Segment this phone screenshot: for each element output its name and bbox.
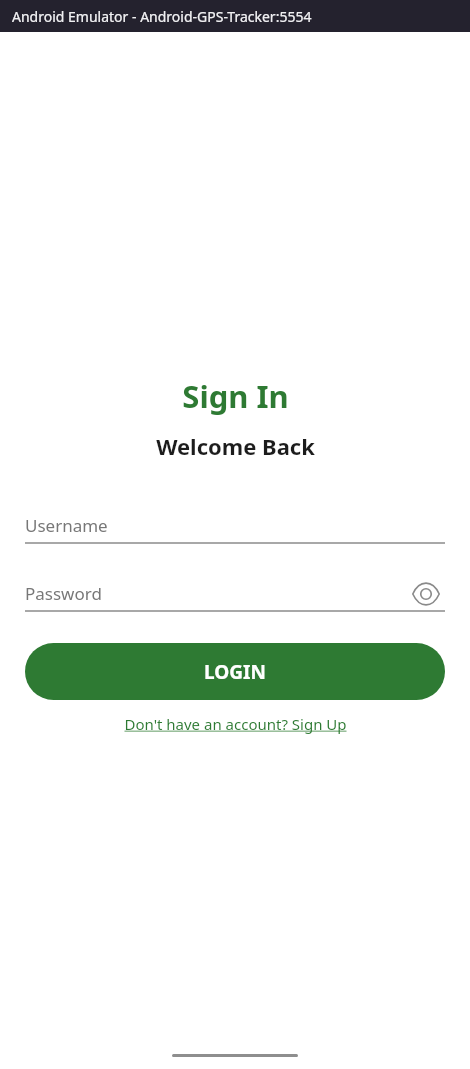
- staticText: Android Emulator - Android-GPS-Tracker:5…: [12, 7, 312, 26]
- button[interactable]: Show password: [407, 577, 445, 610]
- staticText: Username: [25, 514, 108, 537]
- button[interactable]: LOGIN: [25, 643, 445, 700]
- staticText: LOGIN: [204, 659, 266, 685]
- staticText: Sign In: [182, 375, 289, 417]
- button[interactable]: Username: [25, 509, 445, 544]
- staticText: Password: [25, 582, 102, 605]
- button[interactable]: Don't have an account? Sign Up: [118, 710, 353, 738]
- staticText: Welcome Back: [156, 431, 315, 461]
- staticText: Don't have an account? Sign Up: [124, 714, 347, 734]
- button[interactable]: Password: [25, 582, 407, 605]
